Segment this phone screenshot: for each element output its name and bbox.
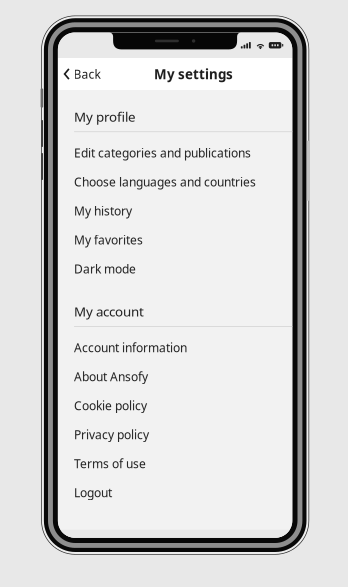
button[interactable]: Edit categories and publications bbox=[58, 138, 292, 167]
staticText: About Ansofy bbox=[74, 369, 148, 384]
button[interactable]: Terms of use bbox=[58, 449, 292, 478]
staticText: My settings bbox=[154, 65, 233, 83]
button[interactable]: Cookie policy bbox=[58, 391, 292, 420]
staticText: Choose languages and countries bbox=[74, 174, 256, 190]
button[interactable]: Privacy policy bbox=[58, 420, 292, 449]
staticText: Terms of use bbox=[74, 456, 146, 471]
staticText: Cookie policy bbox=[74, 398, 147, 413]
staticText: Edit categories and publications bbox=[74, 145, 251, 161]
staticText: My favorites bbox=[74, 232, 143, 248]
button[interactable]: Account information bbox=[58, 333, 292, 362]
button[interactable]: My favorites bbox=[58, 225, 292, 254]
staticText: My profile bbox=[74, 108, 136, 125]
button[interactable]: Choose languages and countries bbox=[58, 167, 292, 196]
button[interactable]: Logout bbox=[58, 478, 292, 507]
staticText: My history bbox=[74, 203, 132, 219]
staticText: Account information bbox=[74, 340, 187, 355]
staticText: Back bbox=[73, 66, 100, 82]
staticText: Privacy policy bbox=[74, 427, 149, 442]
button[interactable]: Back bbox=[58, 58, 108, 90]
button[interactable]: About Ansofy bbox=[58, 362, 292, 391]
staticText: Logout bbox=[74, 485, 112, 500]
staticText: My account bbox=[74, 302, 144, 320]
staticText: Dark mode bbox=[74, 261, 136, 277]
button[interactable]: My history bbox=[58, 196, 292, 225]
button[interactable]: Dark mode bbox=[58, 254, 292, 283]
